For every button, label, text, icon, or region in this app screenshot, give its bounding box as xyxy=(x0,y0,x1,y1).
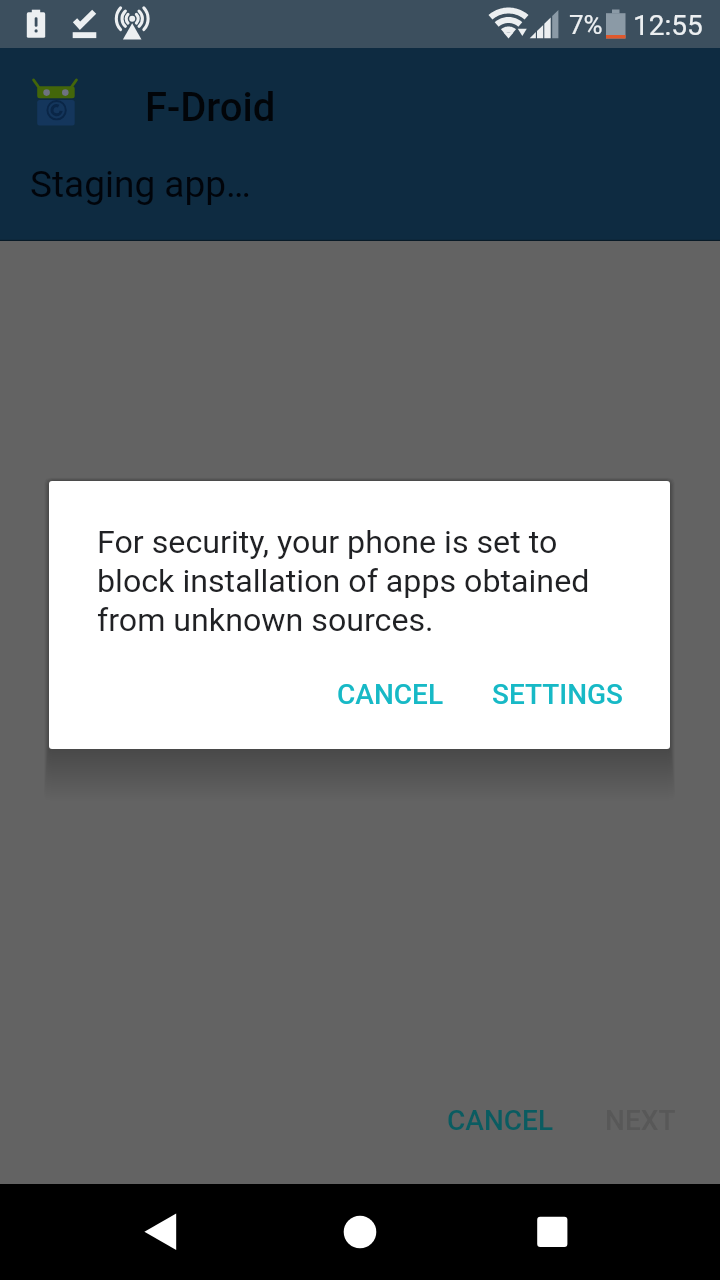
staticText: CANCEL xyxy=(337,678,444,711)
staticText: F-Droid xyxy=(145,84,276,131)
staticText: 12:55 xyxy=(633,9,703,42)
button[interactable]: NEXT xyxy=(589,1090,692,1151)
staticText: CANCEL xyxy=(447,1104,554,1137)
staticText: NEXT xyxy=(605,1104,676,1137)
button[interactable]: Home xyxy=(312,1184,408,1280)
staticText: 7% xyxy=(569,10,603,40)
staticText: SETTINGS xyxy=(492,678,624,711)
button[interactable]: CANCEL xyxy=(431,1090,570,1151)
button[interactable]: CANCEL xyxy=(321,666,460,723)
button[interactable]: SETTINGS xyxy=(476,666,640,723)
staticText: For security, your phone is set to block… xyxy=(97,523,607,639)
staticText: Staging app… xyxy=(30,163,251,206)
button[interactable]: Back xyxy=(112,1184,208,1280)
button[interactable]: Recent apps xyxy=(504,1184,600,1280)
